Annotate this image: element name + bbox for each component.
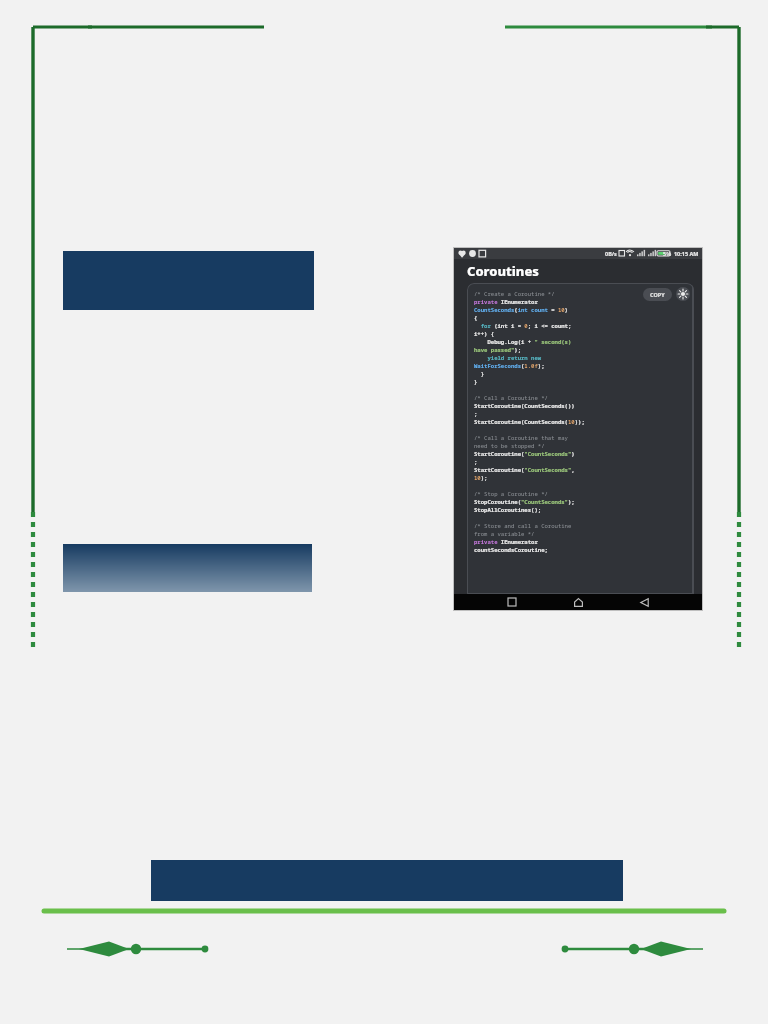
button[interactable]: Home (570, 594, 586, 610)
staticText: /* Create a Coroutine */ private IEnumer… (474, 290, 585, 562)
button[interactable]: COPY (643, 288, 672, 301)
button[interactable]: Toggle theme brightness (676, 287, 690, 301)
staticText: 0B/s (605, 250, 617, 257)
staticText: Coroutines (467, 262, 539, 280)
button[interactable]: Back (636, 594, 652, 610)
button[interactable] (63, 544, 312, 592)
button[interactable]: Recent apps (504, 594, 520, 610)
staticText: 5% 10:15 AM (663, 250, 699, 257)
staticText: COPY (650, 291, 665, 298)
